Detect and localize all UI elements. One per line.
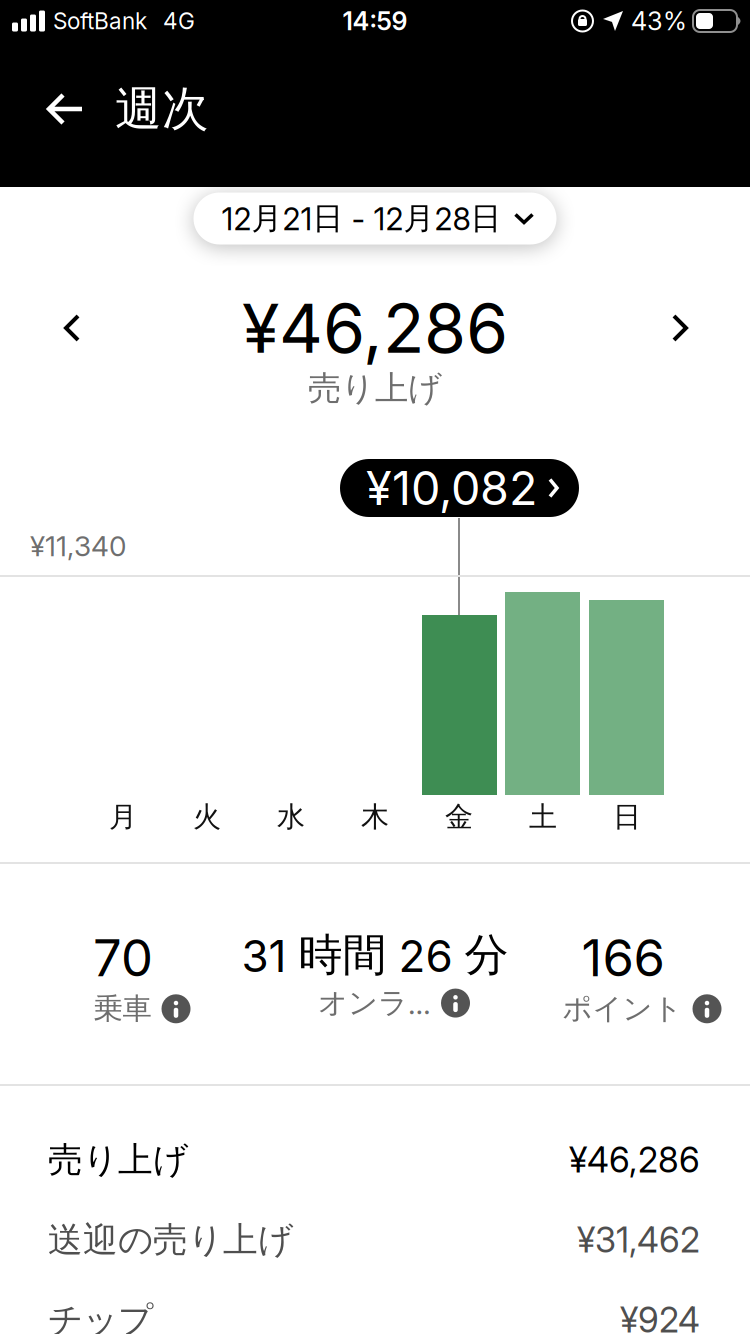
staticText: 週次	[115, 80, 209, 138]
staticText: 送迎の売り上げ	[48, 1219, 293, 1261]
button[interactable]: 166	[473, 928, 750, 1027]
button[interactable]: 31 時間 26 分	[225, 928, 525, 1021]
staticText: 火	[193, 800, 221, 834]
staticText: 43%	[631, 6, 687, 36]
staticText: チップ	[48, 1299, 153, 1334]
button[interactable]: ¥10,082	[340, 459, 579, 517]
staticText: 12月21日 - 12月28日	[221, 200, 501, 237]
staticText: 日	[613, 800, 641, 834]
button[interactable]: 70	[0, 928, 273, 1027]
button[interactable]: 送迎の売り上げ	[0, 1200, 750, 1280]
staticText: 売り上げ	[308, 368, 442, 409]
button[interactable]: Next week	[652, 294, 708, 362]
staticText: SoftBank	[53, 8, 147, 34]
staticText: オンラ…	[318, 985, 431, 1021]
staticText: 乗車	[93, 991, 151, 1027]
staticText: 売り上げ	[48, 1139, 188, 1181]
staticText: 月	[109, 800, 137, 834]
staticText: ¥10,082	[366, 460, 537, 516]
button[interactable]: Previous week	[44, 294, 100, 362]
staticText: 31 時間 26 分	[241, 928, 508, 982]
button[interactable]: チップ	[0, 1280, 750, 1334]
staticText: 土	[529, 800, 557, 834]
staticText: 70	[93, 928, 153, 988]
staticText: ¥46,286	[242, 288, 508, 368]
button[interactable]: Back	[0, 92, 115, 126]
staticText: ¥46,286	[569, 1140, 700, 1180]
staticText: 木	[361, 800, 389, 834]
staticText: 水	[277, 800, 305, 834]
staticText: 166	[581, 928, 664, 988]
staticText: ¥924	[620, 1300, 700, 1334]
staticText: ¥31,462	[577, 1220, 700, 1260]
staticText: ポイント	[562, 991, 682, 1027]
staticText: 金	[445, 800, 473, 834]
staticText: ¥11,340	[30, 529, 126, 562]
button[interactable]: 12月21日 - 12月28日	[193, 192, 556, 244]
staticText: 14:59	[342, 6, 407, 36]
button[interactable]: 売り上げ	[0, 1120, 750, 1200]
staticText: 4G	[163, 8, 195, 34]
